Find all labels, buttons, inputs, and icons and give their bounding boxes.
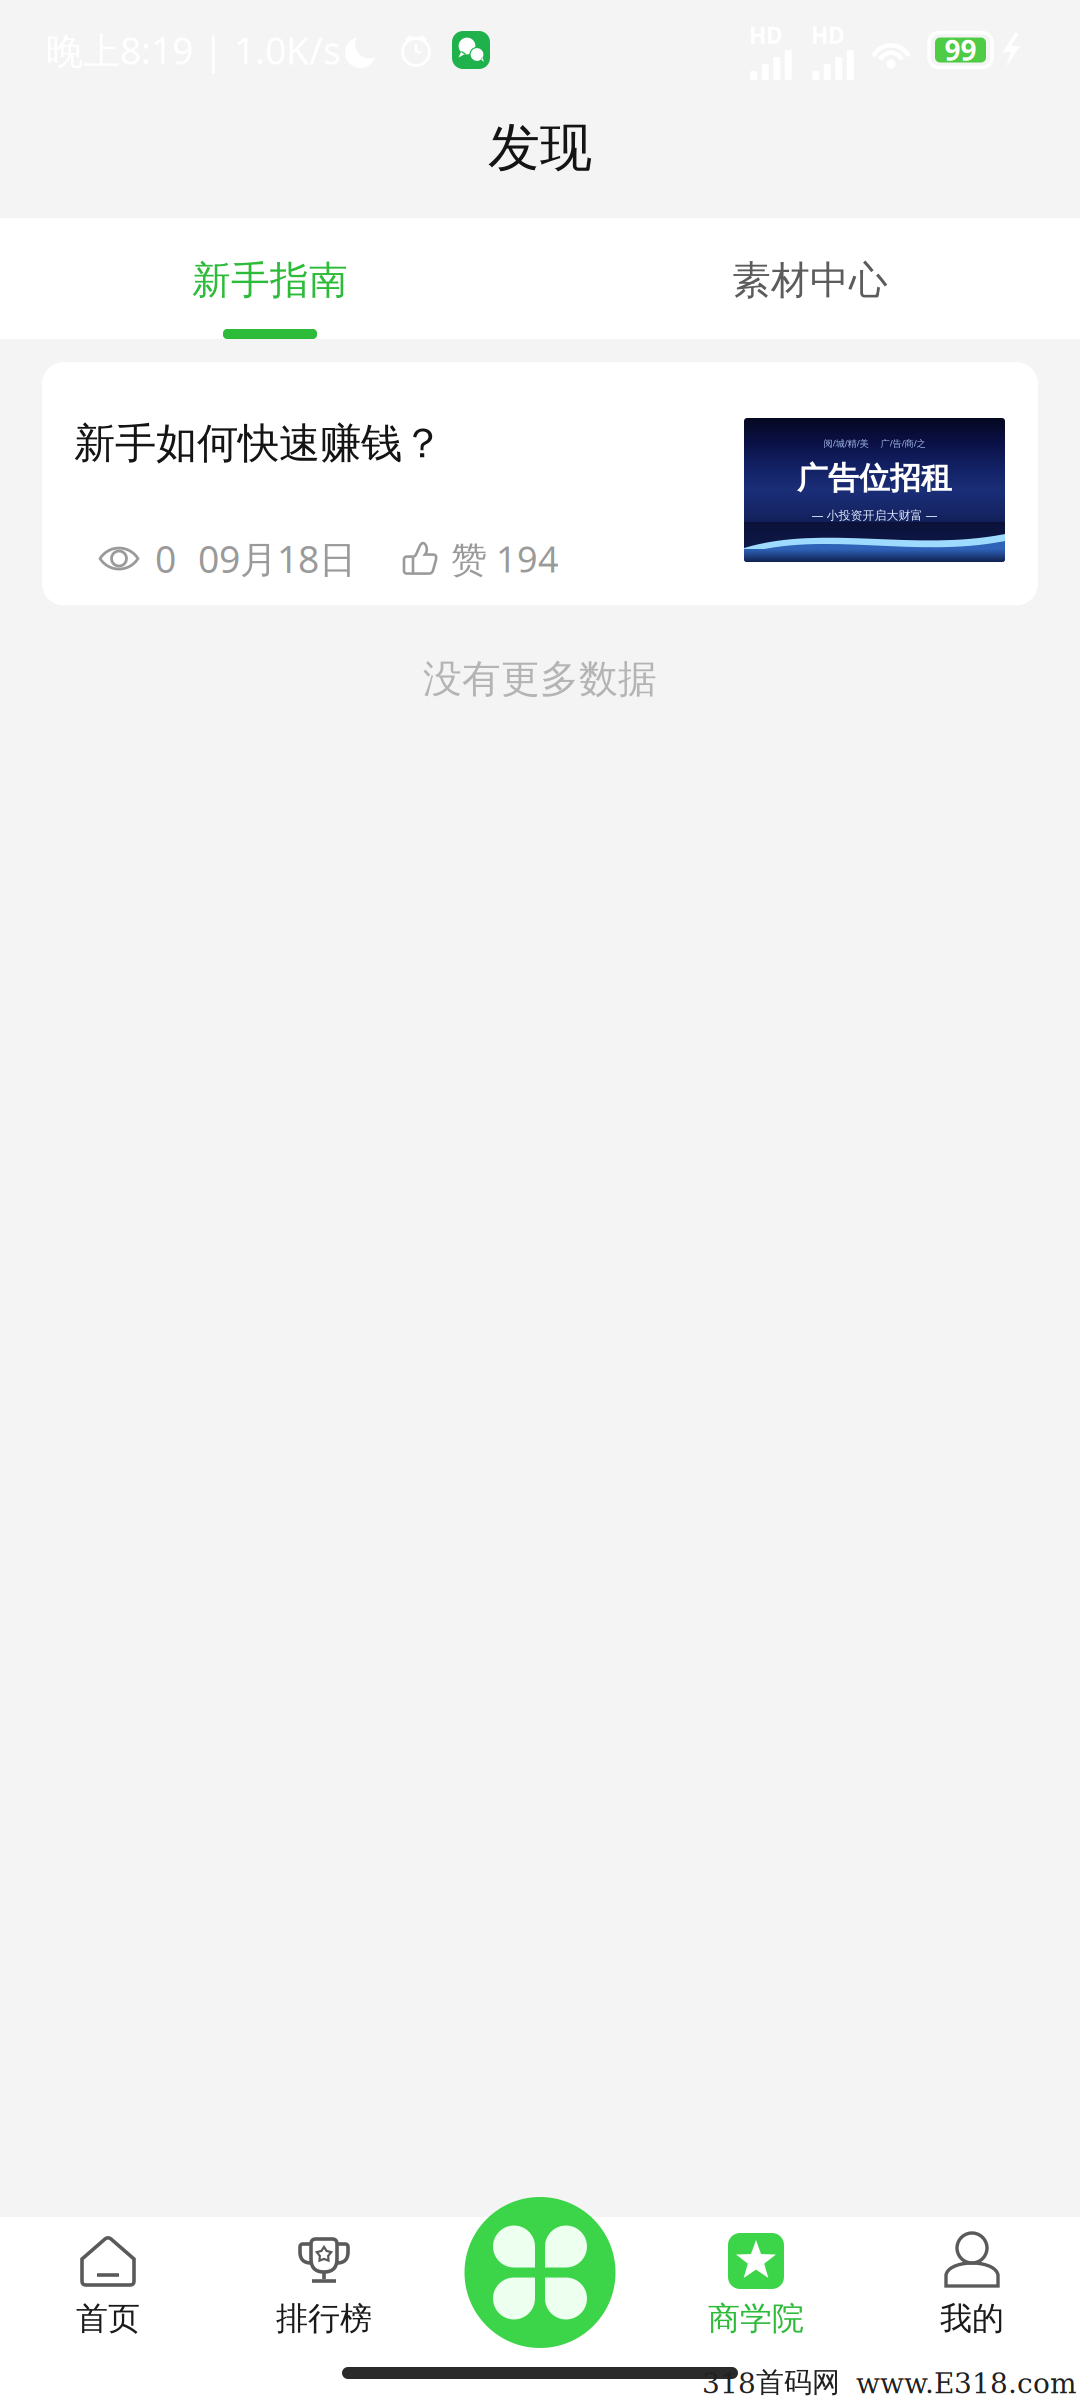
staticText: 318首码网 www.E318.com <box>702 2365 1077 2400</box>
button[interactable]: 排行榜 <box>216 2217 432 2400</box>
button[interactable]: 我的 <box>864 2217 1080 2400</box>
staticText: 广告位招租 <box>797 459 952 497</box>
staticText: 发现 <box>488 116 592 180</box>
staticText: HD <box>811 20 845 50</box>
staticText: 0 <box>155 534 176 583</box>
staticText: 新手如何快速赚钱？ <box>74 418 443 469</box>
staticText: 我的 <box>940 2299 1004 2338</box>
staticText: 没有更多数据 <box>423 655 657 703</box>
staticText: 99 <box>944 31 976 69</box>
staticText: 09月18日 <box>198 534 356 583</box>
button[interactable]: 首页 <box>0 2217 216 2400</box>
staticText: 商学院 <box>708 2299 804 2338</box>
button[interactable]: 新手指南 <box>0 218 540 339</box>
staticText: — 小投资开启大财富 — <box>811 507 937 523</box>
staticText: 素材中心 <box>732 256 888 304</box>
staticText: 赞 194 <box>451 535 559 582</box>
button[interactable]: 发布 <box>464 2197 615 2348</box>
button[interactable]: 素材中心 <box>540 218 1080 339</box>
staticText: 新手指南 <box>192 256 348 304</box>
staticText: HD <box>749 20 783 50</box>
staticText: 排行榜 <box>276 2299 372 2338</box>
button[interactable]: 新手如何快速赚钱？ <box>42 362 1038 605</box>
staticText: 晚上8:19 | 1.0K/s <box>46 25 341 75</box>
staticText: 阅/城/精/美 广/告/商/之 <box>823 437 925 449</box>
staticText: 首页 <box>76 2299 140 2338</box>
button[interactable]: 商学院 <box>648 2217 864 2400</box>
